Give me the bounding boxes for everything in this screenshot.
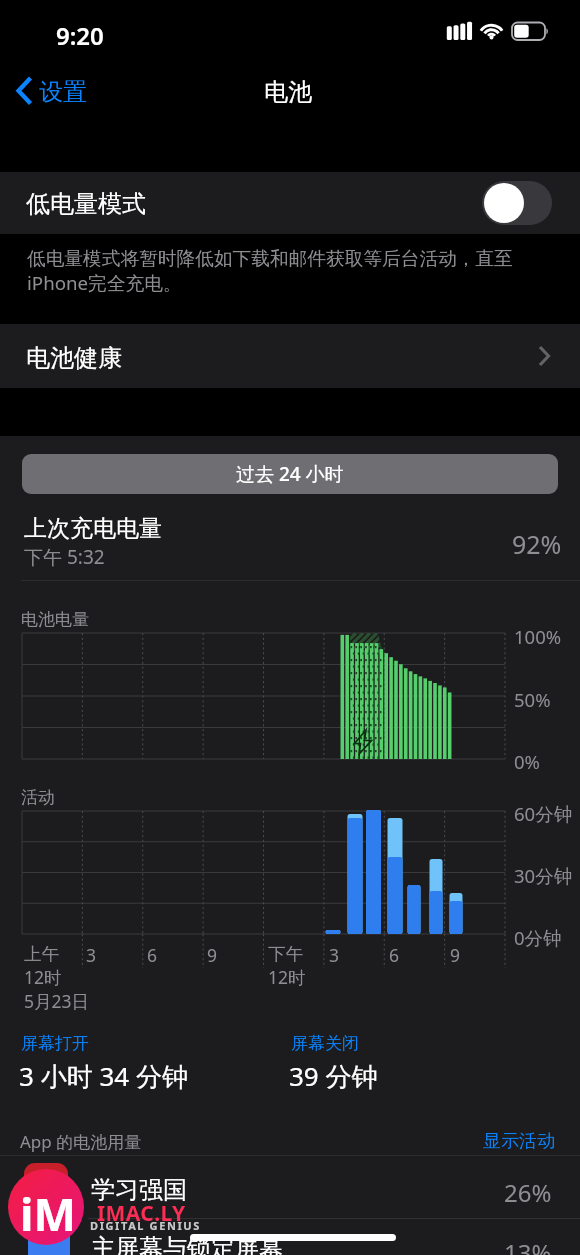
staticText: 过去 24 小时 — [236, 461, 344, 487]
staticText: 下午 — [268, 943, 303, 965]
staticText: 上午 — [24, 943, 59, 965]
staticText: 3 — [86, 943, 97, 967]
staticText: 26% — [504, 1176, 552, 1209]
button[interactable] — [0, 1219, 580, 1255]
staticText: iM — [20, 1183, 76, 1244]
staticText: 下午 5:32 — [24, 544, 105, 570]
button[interactable]: 过去 24 小时 — [22, 454, 558, 494]
staticText: 92% — [512, 527, 562, 561]
staticText: 电池电量 — [21, 609, 89, 630]
staticText: 屏幕关闭 — [291, 1033, 359, 1054]
staticText: 13% — [504, 1236, 552, 1255]
staticText: 100% — [514, 624, 562, 649]
staticText: 5月23日 — [24, 989, 90, 1013]
staticText: 6 — [147, 943, 158, 967]
staticText: 12时 — [24, 965, 62, 989]
staticText: 电池健康 — [26, 343, 122, 373]
staticText: 9 — [450, 943, 461, 967]
staticText: 50% — [514, 687, 551, 712]
staticText: 30分钟 — [514, 863, 573, 888]
button[interactable] — [0, 324, 580, 388]
button[interactable] — [0, 172, 580, 234]
staticText: 9:20 — [56, 19, 104, 52]
button[interactable]: 显示活动 — [470, 1126, 574, 1154]
staticText: 3 — [329, 943, 340, 967]
button[interactable] — [0, 1156, 580, 1218]
button[interactable]: 设置 — [8, 70, 118, 116]
staticText: 主屏幕与锁定屏幕 — [91, 1233, 283, 1255]
staticText: 上次充电电量 — [24, 514, 162, 543]
staticText: IMAC.LY — [97, 1199, 186, 1228]
staticText: 12时 — [268, 965, 306, 989]
staticText: App 的电池用量 — [20, 1130, 142, 1153]
staticText: 0% — [514, 749, 540, 774]
staticText: 活动 — [21, 787, 55, 808]
staticText: 低电量模式将暂时降低如下载和邮件获取等后台活动，直至 iPhone完全充电。 — [27, 245, 517, 305]
staticText: 0分钟 — [514, 925, 562, 950]
staticText: 学习强国 — [91, 1175, 187, 1205]
staticText: 6 — [389, 943, 400, 967]
staticText: 屏幕打开 — [21, 1033, 89, 1054]
button[interactable]: Low Power Mode toggle — [482, 181, 552, 225]
staticText: 39 分钟 — [289, 1058, 378, 1094]
staticText: 低电量模式 — [26, 189, 146, 219]
staticText: 3 小时 34 分钟 — [19, 1058, 188, 1094]
staticText: 60分钟 — [514, 801, 573, 826]
staticText: 电池 — [264, 77, 312, 107]
staticText: 9 — [207, 943, 218, 967]
staticText: 设置 — [39, 77, 87, 107]
staticText: 显示活动 — [483, 1130, 555, 1153]
staticText: DIGITAL GENIUS — [90, 1218, 201, 1233]
